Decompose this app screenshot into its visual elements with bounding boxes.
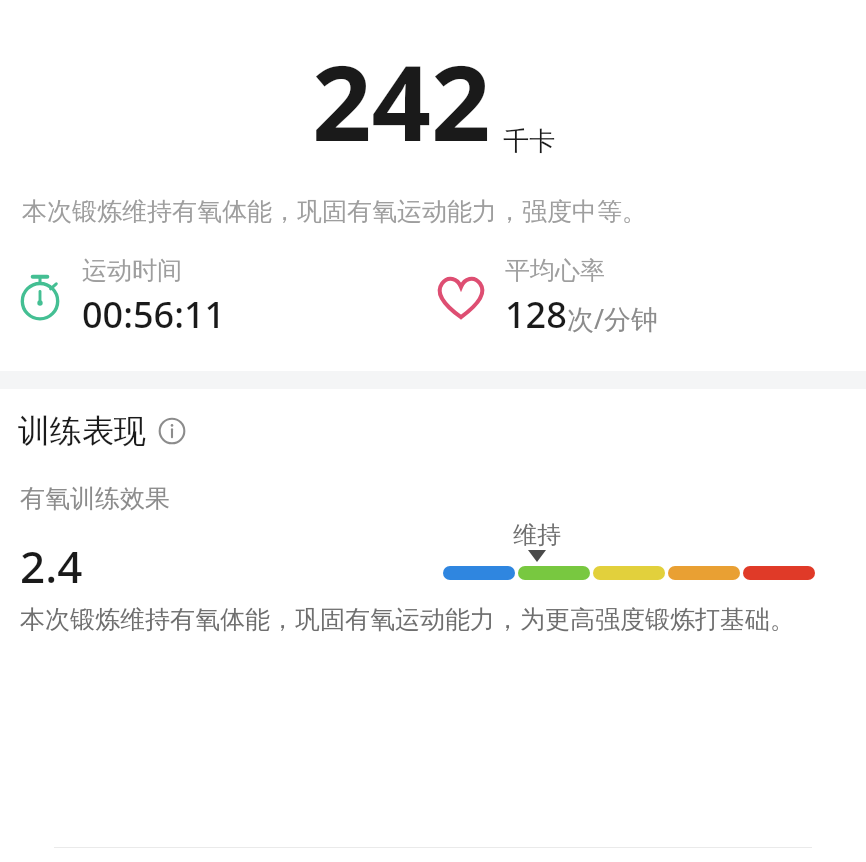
staticText: 训练表现 xyxy=(18,411,146,451)
other: Information xyxy=(158,417,186,445)
staticText: 242 xyxy=(312,30,491,172)
staticText: 128 xyxy=(505,290,567,339)
staticText: 本次锻炼维持有氧体能，巩固有氧运动能力，强度中等。 xyxy=(22,196,840,227)
staticText: 本次锻炼维持有氧体能，巩固有氧运动能力，为更高强度锻炼打基础。 xyxy=(20,604,840,635)
staticText: 运动时间 xyxy=(82,255,182,286)
staticText: 次/分钟 xyxy=(567,300,659,337)
staticText: 00:56:11 xyxy=(82,290,226,339)
staticText: 千卡 xyxy=(503,125,555,158)
button[interactable]: Average heart rate xyxy=(433,251,866,343)
other: Duration xyxy=(14,271,66,323)
button[interactable]: 训练表现 xyxy=(18,411,192,451)
staticText: 维持 xyxy=(513,520,561,550)
button[interactable]: Duration xyxy=(14,251,433,343)
staticText: 2.4 xyxy=(20,536,83,596)
other: Average heart rate xyxy=(433,269,489,325)
staticText: 有氧训练效果 xyxy=(20,483,170,514)
staticText: 平均心率 xyxy=(505,255,605,286)
